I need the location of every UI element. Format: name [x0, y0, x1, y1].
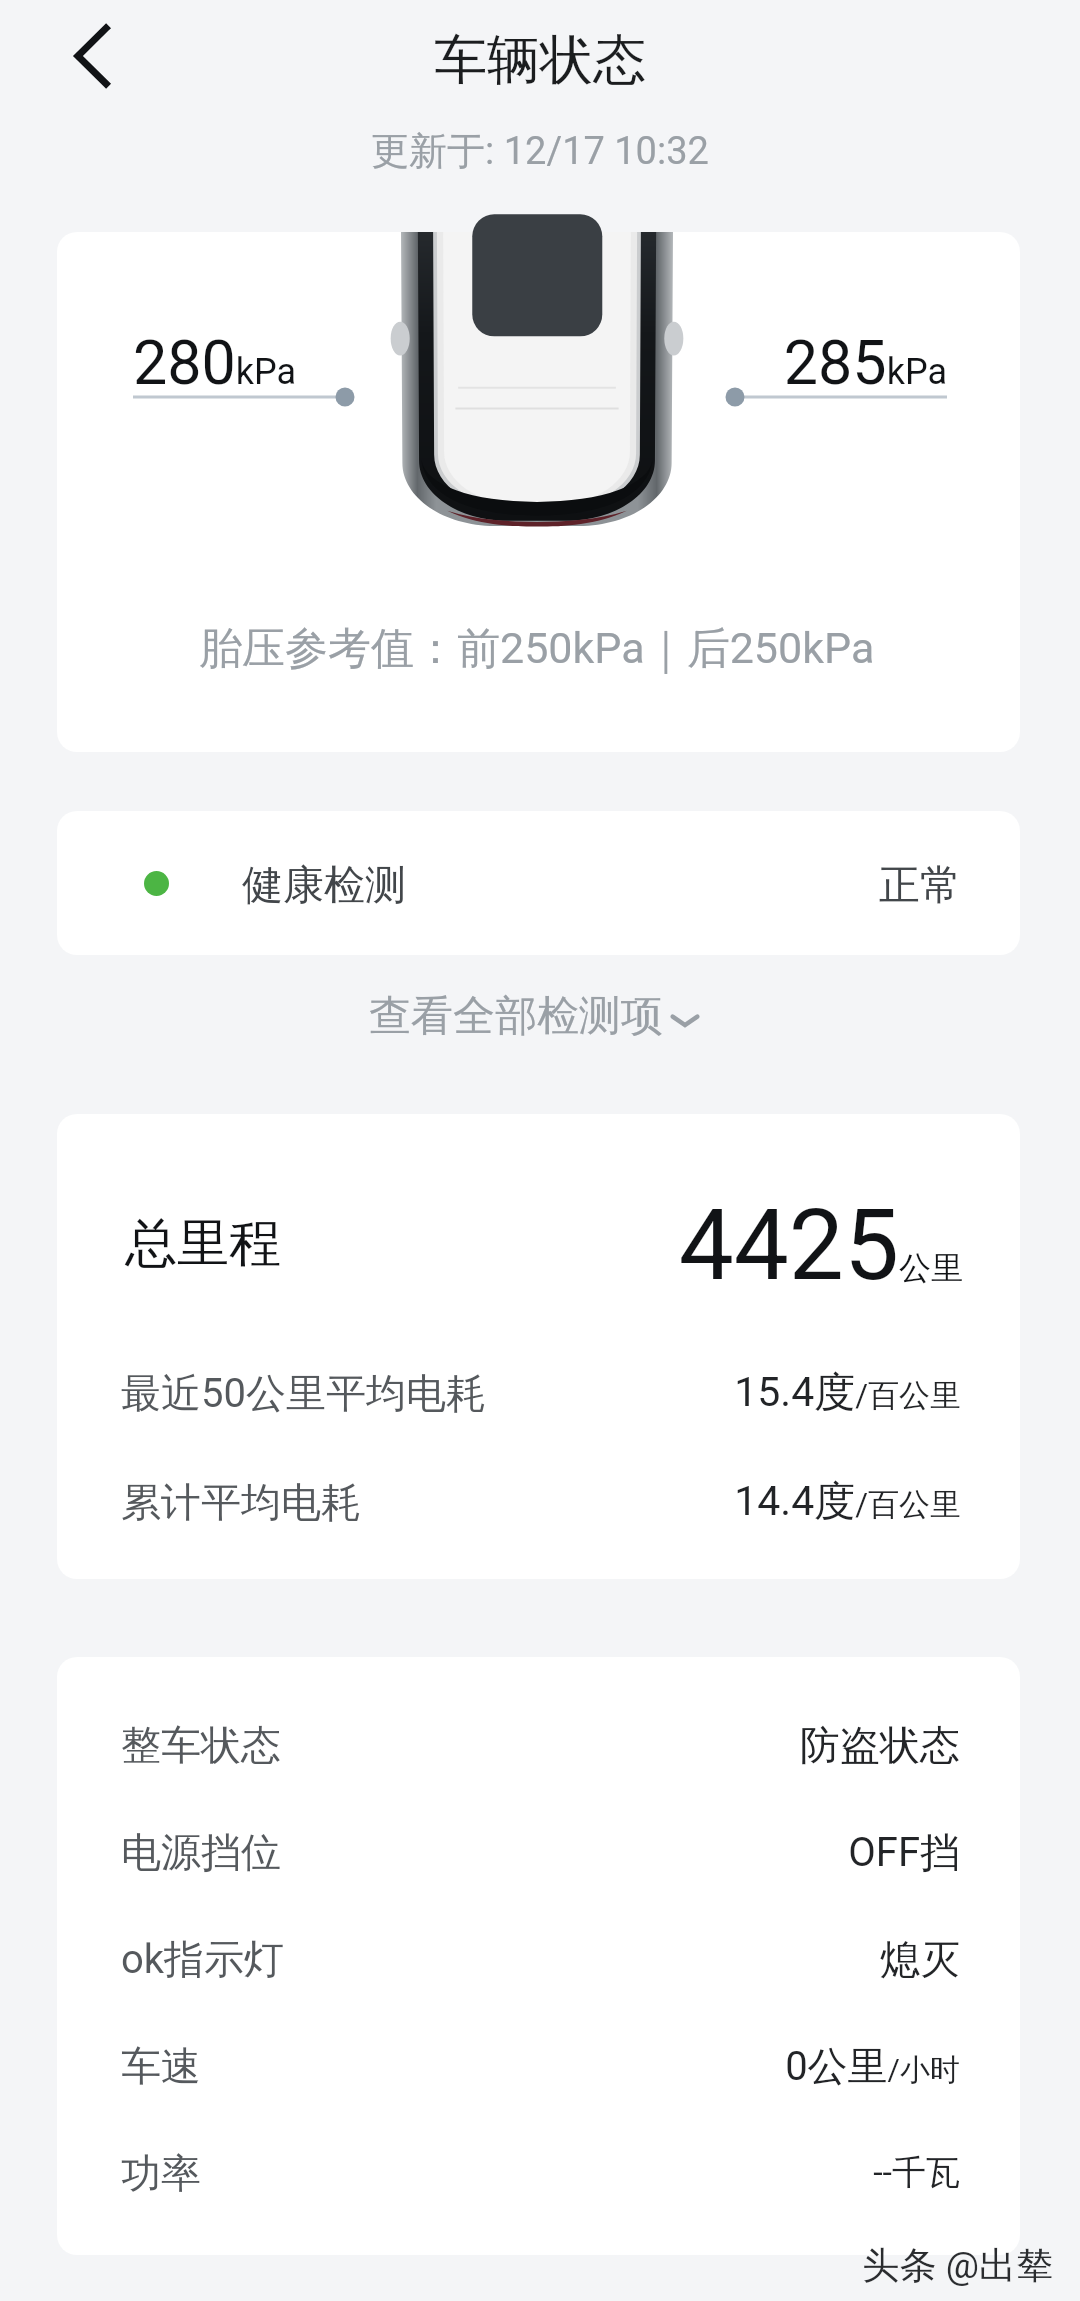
staticText: 14.4度/百公里: [0, 1476, 961, 1528]
staticText: 280kPa: [133, 327, 297, 398]
staticText: 0公里/小时: [0, 2041, 960, 2091]
staticText: 正常: [57, 860, 961, 912]
staticText: 整车状态: [121, 1720, 281, 1770]
staticText: 4425公里: [0, 1188, 963, 1303]
staticText: 健康检测: [242, 860, 406, 912]
staticText: 车速: [121, 2041, 201, 2091]
staticText: 车辆状态: [0, 27, 1080, 94]
staticText: 总里程: [125, 1211, 281, 1277]
staticText: OFF挡: [0, 1827, 960, 1877]
staticText: 285kPa: [0, 327, 947, 398]
button[interactable]: Back: [48, 14, 136, 102]
staticText: ok指示灯: [121, 1934, 285, 1984]
staticText: 更新于: 12/17 10:32: [0, 127, 1080, 175]
button[interactable]: 查看全部检测项: [0, 963, 1080, 1075]
staticText: 查看全部检测项: [369, 990, 663, 1043]
staticText: 防盗状态: [0, 1720, 960, 1770]
staticText: 15.4度/百公里: [0, 1367, 961, 1419]
button[interactable]: 健康检测: [57, 811, 1020, 955]
staticText: --千瓦: [0, 2151, 960, 2194]
staticText: 熄灭: [0, 1934, 960, 1984]
staticText: 累计平均电耗: [121, 1477, 361, 1527]
staticText: 功率: [121, 2148, 201, 2198]
staticText: 最近50公里平均电耗: [121, 1368, 486, 1418]
staticText: 胎压参考值：前250kPa｜后250kPa: [199, 622, 875, 676]
staticText: 电源挡位: [121, 1827, 281, 1877]
staticText: 头条 @出辇: [0, 2242, 1053, 2289]
